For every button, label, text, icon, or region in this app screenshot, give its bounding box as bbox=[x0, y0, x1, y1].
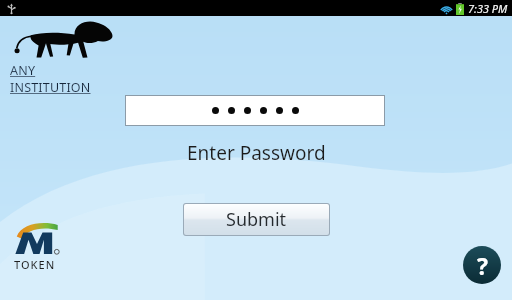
button[interactable]: Submit bbox=[184, 204, 329, 235]
staticText: ? bbox=[477, 250, 488, 281]
button[interactable]: Help bbox=[463, 246, 501, 284]
button[interactable] bbox=[126, 96, 384, 125]
staticText: TOKEN bbox=[14, 257, 56, 272]
staticText: ANY INSTITUTION bbox=[10, 62, 118, 96]
staticText: 7:33 PM bbox=[468, 1, 508, 16]
staticText: Enter Password bbox=[187, 140, 326, 166]
staticText: Submit bbox=[226, 207, 287, 232]
